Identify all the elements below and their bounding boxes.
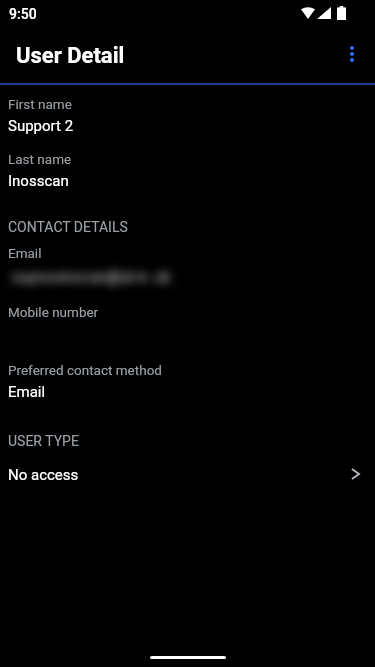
staticText: Preferred contact method [8,362,162,378]
button[interactable]: More options [328,30,375,78]
staticText: 9:50 [9,6,37,22]
staticText: Mobile number [8,304,99,320]
button[interactable]: No access [8,455,365,495]
staticText: User Detail [16,43,125,69]
staticText: Last name [8,151,72,167]
staticText: CONTACT DETAILS [8,219,128,235]
staticText: No access [8,466,79,484]
staticText: Support 2 [8,117,74,135]
staticText: First name [8,96,72,112]
staticText: Email [8,245,42,261]
staticText: USER TYPE [8,433,79,449]
staticText: Inosscan [8,172,69,190]
staticText: Email [8,383,46,401]
